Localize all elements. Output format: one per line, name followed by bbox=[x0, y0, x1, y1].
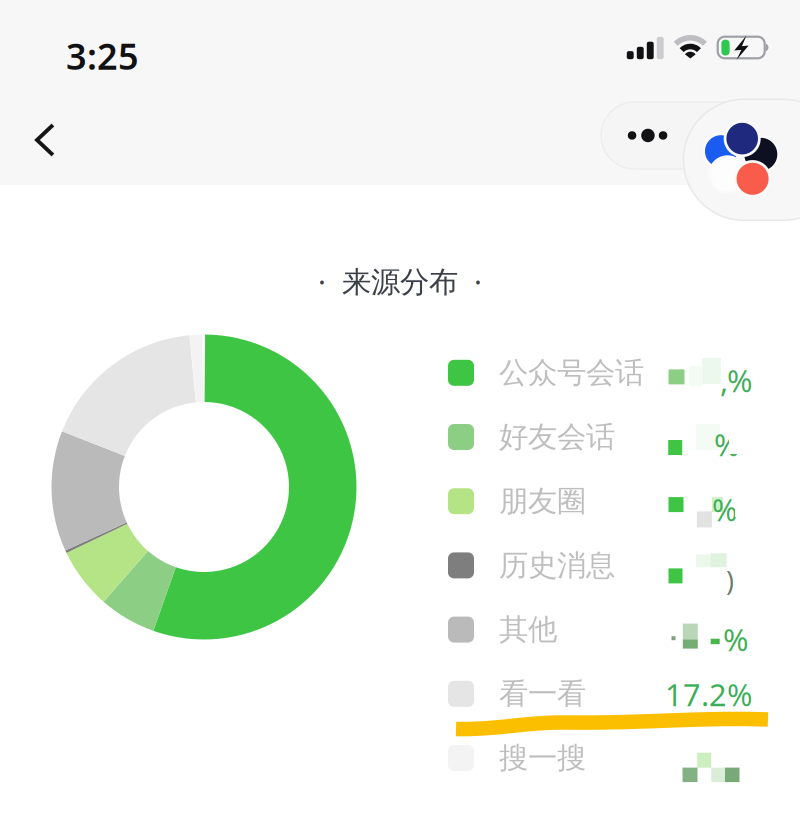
staticText: % bbox=[714, 424, 739, 465]
button[interactable]: 好友会话 bbox=[448, 415, 768, 459]
staticText: · 来源分布 · bbox=[318, 261, 482, 300]
staticText: 历史消息 bbox=[499, 547, 615, 583]
staticText: % bbox=[727, 360, 752, 401]
button[interactable]: 朋友圈 bbox=[448, 479, 768, 523]
button[interactable]: 其他 bbox=[448, 608, 768, 652]
staticText: ) bbox=[726, 563, 734, 598]
button[interactable]: 搜一搜 bbox=[448, 736, 768, 780]
button[interactable]: 历史消息 bbox=[448, 543, 768, 587]
button[interactable]: 公众号会话 bbox=[448, 351, 768, 395]
button[interactable]: Back bbox=[8, 103, 82, 177]
staticText: % bbox=[723, 619, 748, 660]
button[interactable]: App logo bbox=[683, 99, 800, 220]
staticText: 看一看 bbox=[499, 676, 586, 712]
staticText: 好友会话 bbox=[499, 419, 615, 455]
staticText: 公众号会话 bbox=[499, 355, 644, 391]
staticText: 搜一搜 bbox=[499, 740, 586, 776]
button[interactable]: 看一看 bbox=[448, 672, 768, 716]
staticText: , bbox=[720, 360, 728, 401]
staticText: % bbox=[712, 489, 737, 530]
button[interactable]: More bbox=[601, 102, 779, 169]
staticText: 3:25 bbox=[66, 32, 139, 80]
staticText: 朋友圈 bbox=[499, 483, 586, 519]
staticText: 其他 bbox=[499, 612, 557, 648]
staticText: 17.2% bbox=[665, 674, 752, 715]
